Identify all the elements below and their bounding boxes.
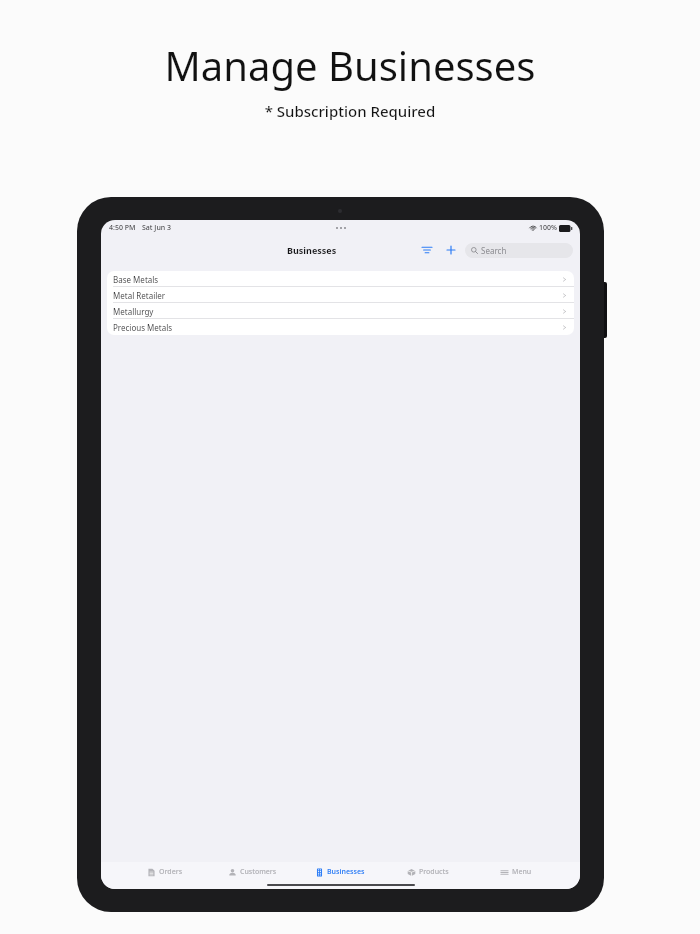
button[interactable]: Businesses [296, 867, 384, 877]
button[interactable]: Search [465, 243, 573, 258]
button[interactable]: Metal Retailer [107, 287, 574, 303]
staticText: Customers [240, 867, 277, 877]
button[interactable]: Precious Metals [107, 319, 574, 335]
button[interactable]: Base Metals [107, 271, 574, 287]
button[interactable]: Products [384, 867, 472, 877]
staticText: Metal Retailer [113, 290, 166, 301]
staticText: Manage Businesses [0, 38, 700, 92]
staticText: Businesses [287, 244, 337, 256]
staticText: Base Metals [113, 274, 159, 285]
staticText: 4:50 PM [109, 223, 136, 233]
button[interactable]: Customers [208, 867, 296, 877]
staticText: Metallurgy [113, 306, 154, 317]
staticText: 100% [539, 223, 557, 233]
button[interactable]: Add business [442, 241, 460, 259]
staticText: Products [419, 867, 449, 877]
button[interactable]: Menu [472, 867, 560, 877]
staticText: Sat Jun 3 [142, 223, 171, 233]
button[interactable]: Sort [418, 241, 436, 259]
staticText: Orders [159, 867, 183, 877]
staticText: Search [481, 245, 507, 256]
staticText: Businesses [327, 867, 365, 877]
button[interactable]: Metallurgy [107, 303, 574, 319]
staticText: Menu [512, 867, 532, 877]
button[interactable]: Orders [121, 867, 208, 877]
staticText: Precious Metals [113, 322, 173, 333]
staticText: * Subscription Required [0, 101, 700, 121]
